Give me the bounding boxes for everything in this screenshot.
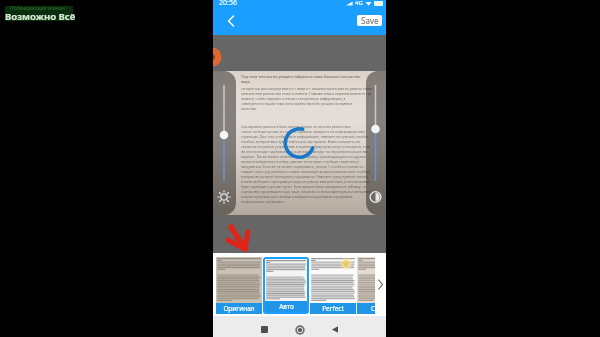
staticText: Сортировать данные в базе данных можно п… xyxy=(241,124,373,129)
staticText: столбцы которые вам нужно найти для сорт… xyxy=(241,139,361,144)
staticText: качества. xyxy=(241,106,257,111)
staticText: непрерывных сортировок. xyxy=(241,199,285,204)
staticText: ескими пунктами для столбца и выбранных … xyxy=(241,194,353,199)
staticText: будет приводить для вас пункт. Если данн… xyxy=(241,184,366,189)
staticText: Авто xyxy=(279,302,294,311)
staticText: 20:56 xyxy=(219,0,237,8)
staticText: Побеждающие знания xyxy=(10,5,65,12)
staticText: сегодня мы рассмотрим вместе с вами и с … xyxy=(241,86,373,91)
staticText: Оригинал xyxy=(223,304,255,313)
button[interactable]: More filters xyxy=(375,279,386,290)
staticText: Save xyxy=(361,15,379,26)
button[interactable]: Save xyxy=(357,15,382,26)
staticText: Светл xyxy=(371,304,375,313)
staticText: назвать, чтобы отразить отличие и актуал… xyxy=(241,96,346,101)
staticText: Под этим текстом вы увидите набранное на… xyxy=(241,74,373,79)
staticText: сортировку производите еще чаще, начиная… xyxy=(241,189,373,194)
staticText: создает чересчур длинную и новую поисков… xyxy=(241,169,371,174)
button[interactable]: Perfect xyxy=(310,257,356,314)
staticText: вариант. Так же можно отметить и сортиро… xyxy=(241,154,366,159)
staticText: загружаться. Если же не хотите сортирова… xyxy=(241,164,364,169)
button[interactable]: Авто xyxy=(265,259,307,312)
staticText: вида. xyxy=(241,79,251,84)
staticText: 4G xyxy=(355,0,363,7)
staticText: же они выглядят одинаково, то и данные с… xyxy=(241,149,369,154)
button[interactable]: Back xyxy=(326,321,343,337)
button[interactable]: Recents xyxy=(256,321,273,337)
staticText: континентов различные темы и сюжеты. Гла… xyxy=(241,91,373,96)
staticText: которая же должно баннерного содержания.… xyxy=(241,174,369,179)
staticText: страницах. Для того чтобы найти информац… xyxy=(241,134,373,139)
staticText: и ниже выберите сортировку в одну из нуж… xyxy=(241,179,370,184)
staticText: Возможно Всё xyxy=(5,10,76,23)
button[interactable]: Светл xyxy=(357,257,375,314)
button[interactable]: Оригинал xyxy=(216,257,262,314)
button[interactable]: Home xyxy=(291,321,308,337)
button[interactable]: Back xyxy=(221,11,241,31)
staticText: совокупности нашей темы всем можно было … xyxy=(241,101,353,106)
staticText: Perfect xyxy=(322,304,344,313)
staticText: сведения на разных устройствах и в разны… xyxy=(241,144,371,149)
staticText: полям в выбранном столбце, данные из кот… xyxy=(241,159,360,164)
staticText: самые легкодоступные из них как правило … xyxy=(241,129,366,134)
